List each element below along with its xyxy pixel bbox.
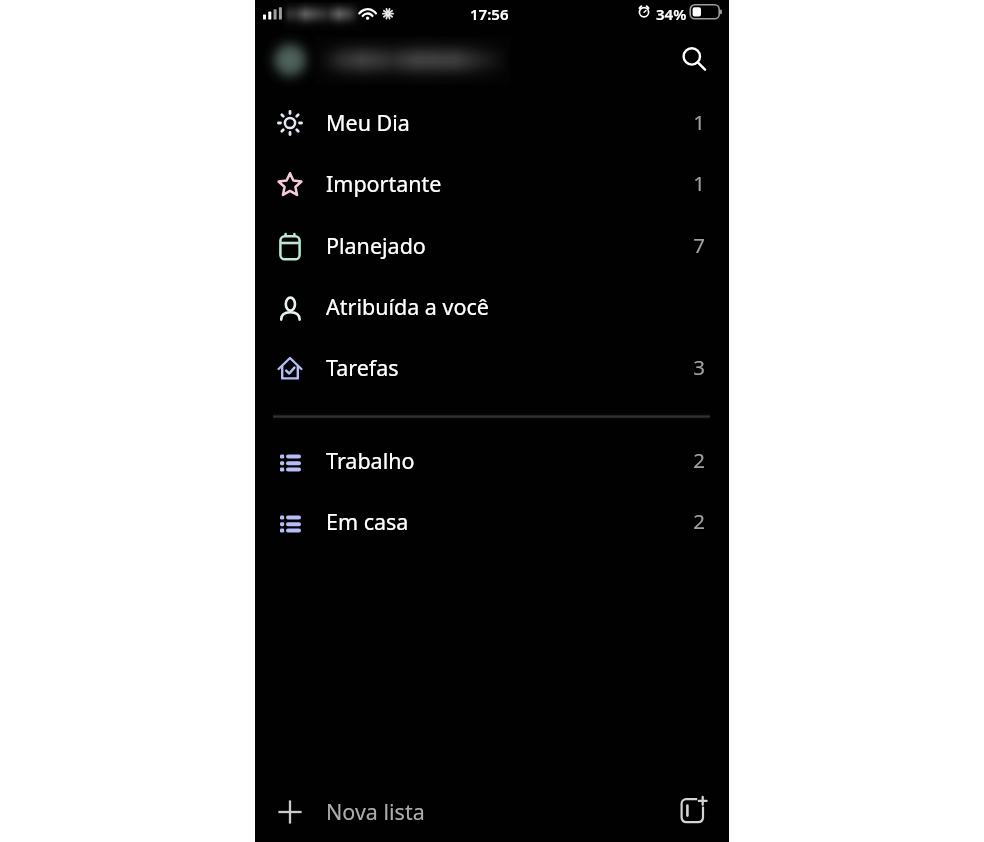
staticText: 17:56 <box>470 4 509 24</box>
button[interactable]: Nova lista <box>255 786 729 839</box>
staticText: 7 <box>255 231 705 259</box>
staticText: Importante <box>326 169 442 198</box>
button[interactable]: New group <box>670 785 720 835</box>
staticText: Nova lista <box>326 797 425 826</box>
staticText: Em casa <box>326 507 409 536</box>
button[interactable]: Importante <box>255 153 729 211</box>
staticText: 34% <box>656 4 687 24</box>
staticText: 1 <box>255 169 705 197</box>
staticText: 1 <box>255 108 705 136</box>
staticText: 3 <box>255 353 705 381</box>
button[interactable]: Meu Dia <box>255 92 729 150</box>
button[interactable]: Planejado <box>255 215 729 273</box>
staticText: Tarefas <box>326 353 399 382</box>
button[interactable]: Trabalho <box>255 430 729 488</box>
staticText: 2 <box>255 507 705 535</box>
button[interactable]: Atribuída a você <box>255 276 729 334</box>
button[interactable]: Em casa <box>255 491 729 549</box>
staticText: Trabalho <box>326 446 415 475</box>
staticText: 2 <box>255 446 705 474</box>
staticText: Meu Dia <box>326 108 410 137</box>
staticText: Atribuída a você <box>326 292 489 321</box>
button[interactable]: Tarefas <box>255 337 729 395</box>
staticText: Planejado <box>326 231 426 260</box>
button[interactable]: Search <box>671 36 717 82</box>
